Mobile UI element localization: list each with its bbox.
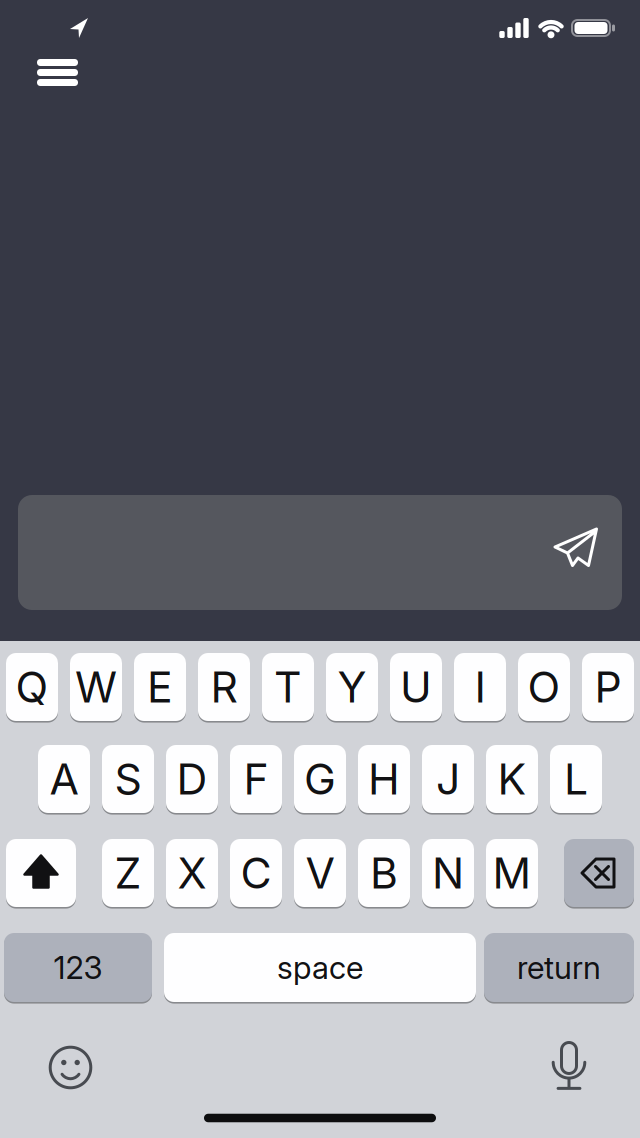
button[interactable]: Y: [326, 651, 378, 722]
staticText: Y: [337, 661, 366, 713]
staticText: F: [243, 753, 268, 805]
staticText: J: [436, 753, 460, 805]
staticText: C: [240, 847, 271, 899]
button[interactable]: [45, 1042, 95, 1092]
staticText: Q: [15, 661, 48, 713]
staticText: I: [474, 661, 485, 713]
button[interactable]: [66, 15, 92, 41]
staticText: H: [368, 753, 400, 805]
button[interactable]: C: [230, 837, 282, 908]
button[interactable]: return: [484, 931, 634, 1003]
button[interactable]: V: [294, 837, 346, 908]
button[interactable]: space: [164, 931, 476, 1003]
button[interactable]: 123: [4, 931, 152, 1003]
button[interactable]: I: [454, 651, 506, 722]
button[interactable]: O: [518, 651, 570, 722]
staticText: 123: [53, 948, 102, 986]
staticText: B: [370, 847, 398, 899]
button[interactable]: M: [486, 837, 538, 908]
button[interactable]: [550, 522, 606, 578]
staticText: N: [432, 847, 464, 899]
staticText: O: [527, 661, 560, 713]
button[interactable]: F: [230, 743, 282, 814]
button[interactable]: G: [294, 743, 346, 814]
button[interactable]: [547, 1040, 591, 1092]
staticText: M: [492, 847, 531, 899]
button[interactable]: R: [198, 651, 250, 722]
staticText: Z: [114, 847, 141, 899]
staticText: E: [147, 661, 173, 713]
staticText: return: [517, 948, 601, 986]
button[interactable]: [36, 58, 78, 86]
button[interactable]: P: [582, 651, 634, 722]
staticText: L: [564, 753, 588, 805]
button[interactable]: K: [486, 743, 538, 814]
button[interactable]: D: [166, 743, 218, 814]
staticText: G: [304, 753, 336, 805]
button[interactable]: Z: [102, 837, 154, 908]
staticText: space: [277, 948, 363, 986]
staticText: K: [497, 753, 526, 805]
button[interactable]: Q: [6, 651, 58, 722]
button[interactable]: W: [70, 651, 122, 722]
staticText: P: [594, 661, 621, 713]
staticText: D: [176, 753, 207, 805]
button[interactable]: E: [134, 651, 186, 722]
button[interactable]: N: [422, 837, 474, 908]
button[interactable]: X: [166, 837, 218, 908]
button[interactable]: L: [550, 743, 602, 814]
button[interactable]: [564, 837, 634, 908]
button[interactable]: [6, 837, 76, 908]
staticText: A: [49, 753, 78, 805]
button[interactable]: T: [262, 651, 314, 722]
button[interactable]: J: [422, 743, 474, 814]
staticText: X: [177, 847, 206, 899]
staticText: T: [274, 661, 302, 713]
button[interactable]: A: [38, 743, 90, 814]
button[interactable]: B: [358, 837, 410, 908]
staticText: W: [75, 661, 117, 713]
staticText: S: [114, 753, 141, 805]
button[interactable]: H: [358, 743, 410, 814]
staticText: U: [400, 661, 432, 713]
button[interactable]: S: [102, 743, 154, 814]
button[interactable]: U: [390, 651, 442, 722]
button[interactable]: [18, 495, 622, 610]
staticText: V: [305, 847, 334, 899]
staticText: R: [210, 661, 237, 713]
